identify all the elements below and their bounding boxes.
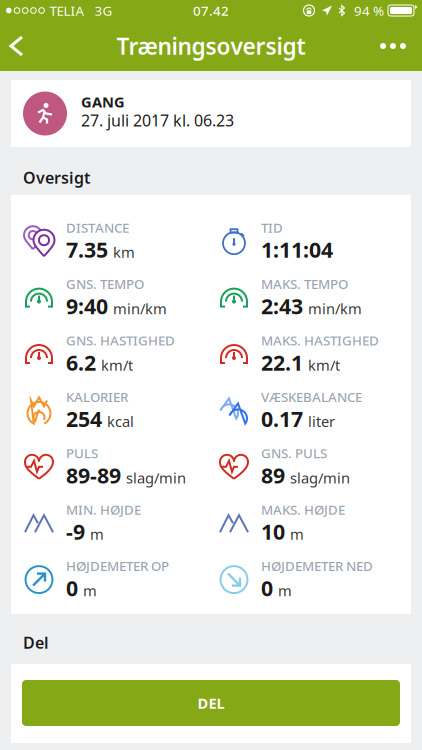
staticText: min/km: [113, 299, 167, 318]
staticText: MAKS. HØJDE: [261, 501, 345, 518]
staticText: 89-89: [66, 461, 121, 489]
button[interactable]: Back: [0, 23, 34, 69]
staticText: 7.35: [66, 235, 108, 264]
staticText: TELIA: [49, 2, 84, 19]
staticText: 22.1: [261, 348, 303, 376]
staticText: GNS. PULS: [261, 444, 327, 462]
staticText: VÆSKEBALANCE: [261, 388, 362, 406]
staticText: Træningsoversigt: [116, 31, 305, 61]
staticText: 3G: [94, 2, 112, 19]
staticText: HØJDEMETER NED: [261, 557, 373, 575]
staticText: m: [290, 524, 304, 544]
staticText: min/km: [308, 299, 362, 318]
staticText: MAKS. HASTIGHED: [261, 331, 379, 349]
staticText: DISTANCE: [66, 219, 129, 236]
staticText: GNS. TEMPO: [66, 275, 144, 293]
staticText: PULS: [66, 444, 98, 462]
staticText: slag/min: [126, 468, 186, 487]
staticText: DEL: [197, 693, 224, 713]
staticText: 0.17: [261, 405, 303, 433]
staticText: km/t: [308, 355, 340, 375]
staticText: GANG: [81, 92, 125, 112]
staticText: Del: [23, 632, 49, 653]
staticText: m: [83, 581, 97, 600]
staticText: TID: [261, 219, 283, 236]
staticText: 1:11:04: [261, 235, 333, 264]
button[interactable]: DEL: [11, 664, 411, 743]
staticText: 10: [261, 517, 285, 546]
staticText: liter: [308, 412, 335, 431]
staticText: 254: [66, 405, 102, 433]
staticText: KALORIER: [66, 388, 128, 406]
staticText: 0: [66, 574, 78, 602]
staticText: GNS. HASTIGHED: [66, 331, 175, 349]
staticText: 6.2: [66, 348, 96, 376]
staticText: km/t: [101, 355, 133, 375]
staticText: MAKS. TEMPO: [261, 275, 348, 293]
staticText: -9: [66, 517, 85, 546]
staticText: 27. juli 2017 kl. 06.23: [81, 110, 234, 131]
staticText: 89: [261, 461, 285, 489]
staticText: 0: [261, 574, 273, 602]
staticText: 07.42: [193, 2, 229, 19]
staticText: 9:40: [66, 292, 108, 320]
staticText: m: [90, 524, 104, 544]
staticText: slag/min: [290, 468, 350, 487]
staticText: m: [278, 581, 292, 600]
staticText: HØJDEMETER OP: [66, 557, 169, 575]
staticText: 2:43: [261, 292, 303, 320]
staticText: Oversigt: [23, 167, 90, 188]
staticText: km: [113, 242, 135, 262]
staticText: 94 %: [354, 2, 384, 19]
button[interactable]: More options: [364, 23, 422, 69]
staticText: MIN. HØJDE: [66, 501, 141, 518]
staticText: kcal: [107, 412, 134, 431]
